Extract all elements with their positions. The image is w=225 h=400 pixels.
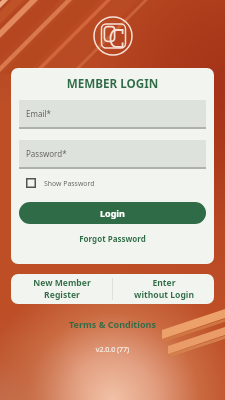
button[interactable]: Forgot Password (11, 233, 214, 244)
button[interactable]: Login (19, 202, 206, 224)
button[interactable]: Terms & Conditions (0, 318, 225, 330)
staticText: Enter without Login (134, 277, 194, 301)
button[interactable]: Enter without Login (113, 274, 214, 304)
other: App logo (92, 15, 134, 57)
staticText: Login (100, 207, 125, 219)
staticText: New Member Register (33, 277, 91, 301)
button[interactable]: Password* (19, 140, 206, 167)
staticText: v2.0.0 (77) (0, 345, 225, 355)
button[interactable]: New Member Register (11, 274, 112, 304)
staticText: Password* (26, 148, 67, 159)
staticText: Show Password (44, 179, 95, 188)
button[interactable]: Show Password (26, 175, 95, 191)
button[interactable]: Email* (19, 100, 206, 127)
staticText: MEMBER LOGIN (11, 75, 214, 91)
staticText: Email* (26, 108, 51, 119)
